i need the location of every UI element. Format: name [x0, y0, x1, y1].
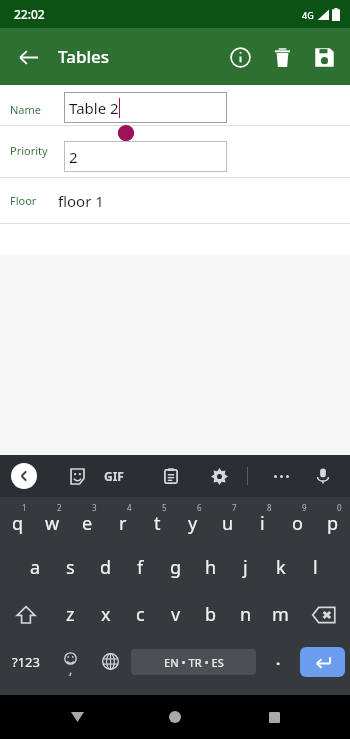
- button[interactable]: More options: [264, 459, 298, 493]
- staticText: 4: [127, 502, 132, 513]
- button[interactable]: Shift: [0, 591, 52, 638]
- button[interactable]: 3: [70, 497, 105, 544]
- button[interactable]: k: [263, 544, 298, 591]
- staticText: EN • TR • ES: [164, 655, 224, 670]
- button[interactable]: Settings: [202, 459, 236, 493]
- staticText: r: [119, 511, 127, 536]
- button[interactable]: 2: [64, 141, 227, 172]
- button[interactable]: 2: [35, 497, 70, 544]
- button[interactable]: GIF: [104, 468, 124, 484]
- staticText: w: [45, 511, 60, 536]
- button[interactable]: 5: [140, 497, 175, 544]
- button[interactable]: s: [53, 544, 88, 591]
- staticText: c: [136, 602, 145, 627]
- button[interactable]: Floor: [0, 178, 350, 223]
- button[interactable]: Stickers: [60, 459, 94, 493]
- staticText: n: [240, 602, 252, 627]
- staticText: p: [327, 511, 339, 536]
- staticText: Tables: [58, 45, 110, 68]
- staticText: u: [222, 511, 234, 536]
- staticText: e: [82, 511, 93, 536]
- staticText: 4G: [302, 9, 314, 21]
- staticText: Name: [10, 102, 42, 117]
- staticText: i: [260, 511, 265, 536]
- staticText: Table 2: [69, 98, 119, 118]
- button[interactable]: m: [263, 591, 298, 638]
- staticText: 0: [337, 502, 342, 513]
- button[interactable]: h: [193, 544, 228, 591]
- button[interactable]: v: [158, 591, 193, 638]
- staticText: 6: [197, 502, 202, 513]
- staticText: g: [170, 555, 182, 580]
- button[interactable]: Clipboard: [154, 459, 188, 493]
- button[interactable]: j: [228, 544, 263, 591]
- staticText: 5: [162, 502, 167, 513]
- staticText: f: [137, 555, 144, 580]
- button[interactable]: EN • TR • ES: [131, 649, 256, 675]
- button[interactable]: 6: [175, 497, 210, 544]
- button[interactable]: n: [228, 591, 263, 638]
- staticText: .: [276, 649, 281, 669]
- staticText: 2: [69, 147, 78, 167]
- staticText: b: [205, 602, 217, 627]
- button[interactable]: Delete: [264, 39, 300, 75]
- staticText: y: [188, 511, 198, 536]
- staticText: h: [205, 555, 217, 580]
- staticText: v: [171, 602, 181, 627]
- staticText: Floor: [10, 193, 37, 208]
- staticText: 8: [267, 502, 272, 513]
- button[interactable]: Voice input: [306, 459, 340, 493]
- button[interactable]: Emoji: [52, 638, 89, 685]
- button[interactable]: a: [17, 544, 53, 591]
- staticText: d: [100, 555, 112, 580]
- button[interactable]: 9: [280, 497, 315, 544]
- button[interactable]: ?123: [0, 638, 52, 685]
- button[interactable]: Back: [55, 695, 99, 739]
- button[interactable]: 8: [245, 497, 280, 544]
- button[interactable]: 7: [210, 497, 245, 544]
- button[interactable]: d: [88, 544, 123, 591]
- button[interactable]: Priority: [0, 126, 350, 174]
- button[interactable]: Save: [306, 39, 342, 75]
- button[interactable]: x: [88, 591, 123, 638]
- staticText: ?123: [12, 653, 40, 671]
- button[interactable]: b: [193, 591, 228, 638]
- button[interactable]: Backspace: [298, 591, 350, 638]
- button[interactable]: .: [256, 638, 300, 685]
- button[interactable]: Recents: [252, 695, 296, 739]
- button[interactable]: z: [52, 591, 88, 638]
- staticText: 2: [57, 502, 62, 513]
- button[interactable]: 0: [315, 497, 350, 544]
- button[interactable]: f: [123, 544, 158, 591]
- staticText: l: [313, 555, 318, 580]
- staticText: o: [292, 511, 303, 536]
- button[interactable]: Back: [11, 463, 37, 489]
- staticText: x: [101, 602, 111, 627]
- button[interactable]: 4: [105, 497, 140, 544]
- button[interactable]: g: [158, 544, 193, 591]
- staticText: t: [154, 511, 161, 536]
- staticText: j: [243, 555, 248, 580]
- button[interactable]: Change language: [89, 638, 131, 685]
- button[interactable]: Home: [153, 695, 197, 739]
- staticText: m: [272, 602, 289, 627]
- staticText: floor 1: [58, 191, 104, 211]
- staticText: q: [12, 511, 24, 536]
- button[interactable]: Table 2: [64, 92, 227, 123]
- button[interactable]: Back: [8, 37, 48, 77]
- button[interactable]: l: [298, 544, 333, 591]
- staticText: ,: [69, 661, 73, 677]
- staticText: k: [276, 555, 286, 580]
- staticText: 22:02: [14, 6, 45, 22]
- button[interactable]: Info: [222, 39, 258, 75]
- button[interactable]: 1: [0, 497, 35, 544]
- staticText: Priority: [10, 143, 48, 158]
- button[interactable]: Enter: [300, 647, 345, 677]
- staticText: 3: [92, 502, 97, 513]
- staticText: 7: [232, 502, 237, 513]
- button[interactable]: Name: [0, 85, 350, 133]
- staticText: s: [66, 555, 75, 580]
- button[interactable]: c: [123, 591, 158, 638]
- staticText: 1: [22, 502, 27, 513]
- staticText: z: [66, 602, 75, 627]
